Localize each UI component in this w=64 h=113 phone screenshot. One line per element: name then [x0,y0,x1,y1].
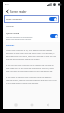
button[interactable]: Back [3,8,10,15]
staticText: Quick typing [6,32,20,35]
button[interactable]: Toggle [50,34,58,38]
button[interactable]: Tutorial [3,23,60,30]
button[interactable]: Quick typing [3,30,60,42]
button[interactable]: Back [44,101,51,108]
staticText: Screen reader [10,10,27,13]
staticText: Use the keyboard to type without lifting… [6,36,33,41]
staticText: 9:41 [5,3,9,6]
button[interactable]: Toggle [49,17,57,21]
button[interactable]: Home [28,101,35,108]
staticText: Voice Assistant [6,18,22,21]
button[interactable]: Recents [12,101,19,108]
staticText: Tutorial [6,25,14,28]
button[interactable]: Voice Assistant [4,15,59,23]
staticText: Settings [6,44,15,47]
staticText: When Voice Assistant is on, your device … [6,49,57,85]
